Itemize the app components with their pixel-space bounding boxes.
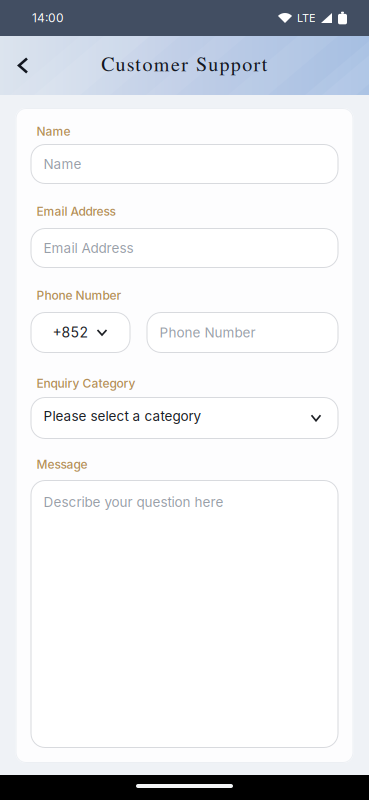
staticText: Enquiry Category (36, 376, 135, 391)
staticText: 14:00 (32, 11, 64, 25)
staticText: Email Address (43, 240, 133, 256)
staticText: Email Address (36, 204, 115, 219)
staticText: Describe your question here (43, 494, 223, 510)
staticText: Phone Number (159, 324, 255, 341)
staticText: Customer Support (101, 50, 268, 77)
staticText: Message (36, 457, 87, 472)
staticText: LTE (297, 11, 316, 25)
staticText: Phone Number (36, 288, 121, 303)
staticText: Name (43, 156, 81, 172)
staticText: +852 (52, 324, 88, 341)
staticText: Please select a category (43, 408, 201, 424)
staticText: Name (36, 124, 70, 139)
